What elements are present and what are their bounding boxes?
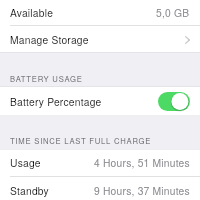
staticText: BATTERY USAGE — [10, 73, 83, 84]
button[interactable]: Available — [0, 0, 200, 25]
staticText: Usage — [10, 155, 41, 170]
button[interactable]: Manage Storage — [0, 26, 200, 52]
button[interactable]: Battery Percentage toggle — [158, 92, 190, 111]
other: Open Manage Storage — [185, 36, 190, 44]
staticText: 9 Hours, 37 Minutes — [94, 183, 190, 198]
staticText: 4 Hours, 51 Minutes — [94, 155, 190, 170]
staticText: 5,0 GB — [156, 5, 190, 20]
staticText: Standby — [10, 183, 49, 198]
staticText: Manage Storage — [10, 32, 89, 47]
button[interactable]: Usage — [0, 149, 200, 176]
staticText: TIME SINCE LAST FULL CHARGE — [10, 135, 152, 146]
staticText: Available — [10, 5, 54, 20]
staticText: Battery Percentage — [10, 94, 102, 109]
button[interactable]: Standby — [0, 177, 200, 200]
button[interactable]: Battery Percentage — [0, 87, 200, 116]
